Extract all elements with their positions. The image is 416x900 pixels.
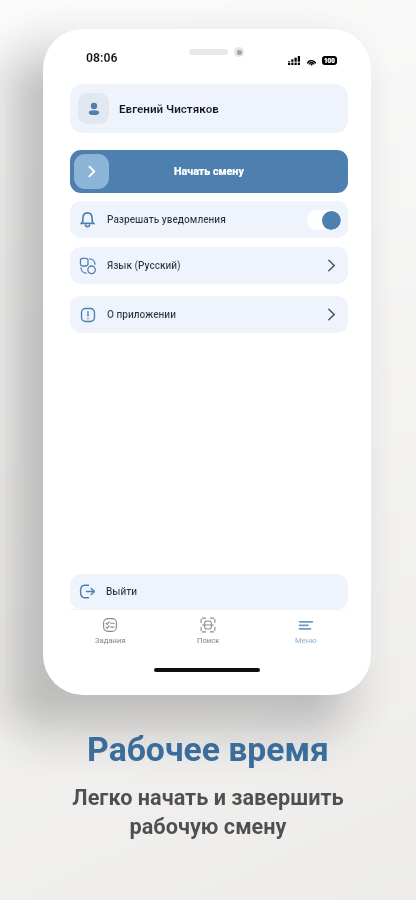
staticText: Выйти xyxy=(106,586,138,598)
staticText: Меню xyxy=(295,636,317,645)
button[interactable]: Выйти xyxy=(70,574,348,609)
button[interactable]: Поиск xyxy=(159,617,257,645)
staticText: Язык (Русский) xyxy=(107,260,181,272)
button[interactable]: Задания xyxy=(61,617,159,645)
button[interactable]: Евгений Чистяков xyxy=(70,84,348,133)
staticText: Евгений Чистяков xyxy=(119,102,219,116)
staticText: Легко начать и завершить рабочую смену xyxy=(72,785,344,840)
staticText: Поиск xyxy=(197,636,220,645)
button[interactable]: О приложении xyxy=(70,296,348,333)
staticText: Разрешать уведомления xyxy=(107,214,226,226)
staticText: Задания xyxy=(95,636,126,645)
button[interactable]: Язык (Русский) xyxy=(70,247,348,284)
staticText: 08:06 xyxy=(86,51,118,65)
button[interactable]: Начать смену xyxy=(70,150,348,193)
button[interactable]: Разрешать уведомления xyxy=(70,201,348,238)
staticText: Начать смену xyxy=(174,165,244,178)
staticText: О приложении xyxy=(107,309,176,321)
staticText: 100 xyxy=(324,56,335,65)
staticText: Рабочее время xyxy=(87,730,329,769)
button[interactable]: Меню xyxy=(257,617,355,645)
